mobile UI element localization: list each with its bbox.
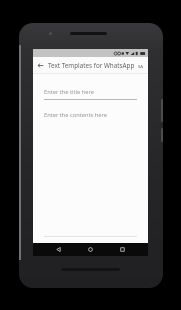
staticText: SAVE xyxy=(138,63,145,69)
staticText: Enter the contents here xyxy=(44,111,107,119)
button[interactable]: Back xyxy=(52,243,65,256)
button[interactable]: Recent apps xyxy=(116,243,129,256)
button[interactable]: Enter the title here xyxy=(44,88,137,100)
button[interactable]: Navigate up xyxy=(33,57,48,74)
staticText: Text Templates for WhatsApp xyxy=(48,61,135,70)
button[interactable]: SAVE xyxy=(135,57,148,74)
staticText: Enter the title here xyxy=(44,88,94,96)
button[interactable]: Enter the contents here xyxy=(44,111,137,119)
button[interactable]: Home xyxy=(84,243,97,256)
